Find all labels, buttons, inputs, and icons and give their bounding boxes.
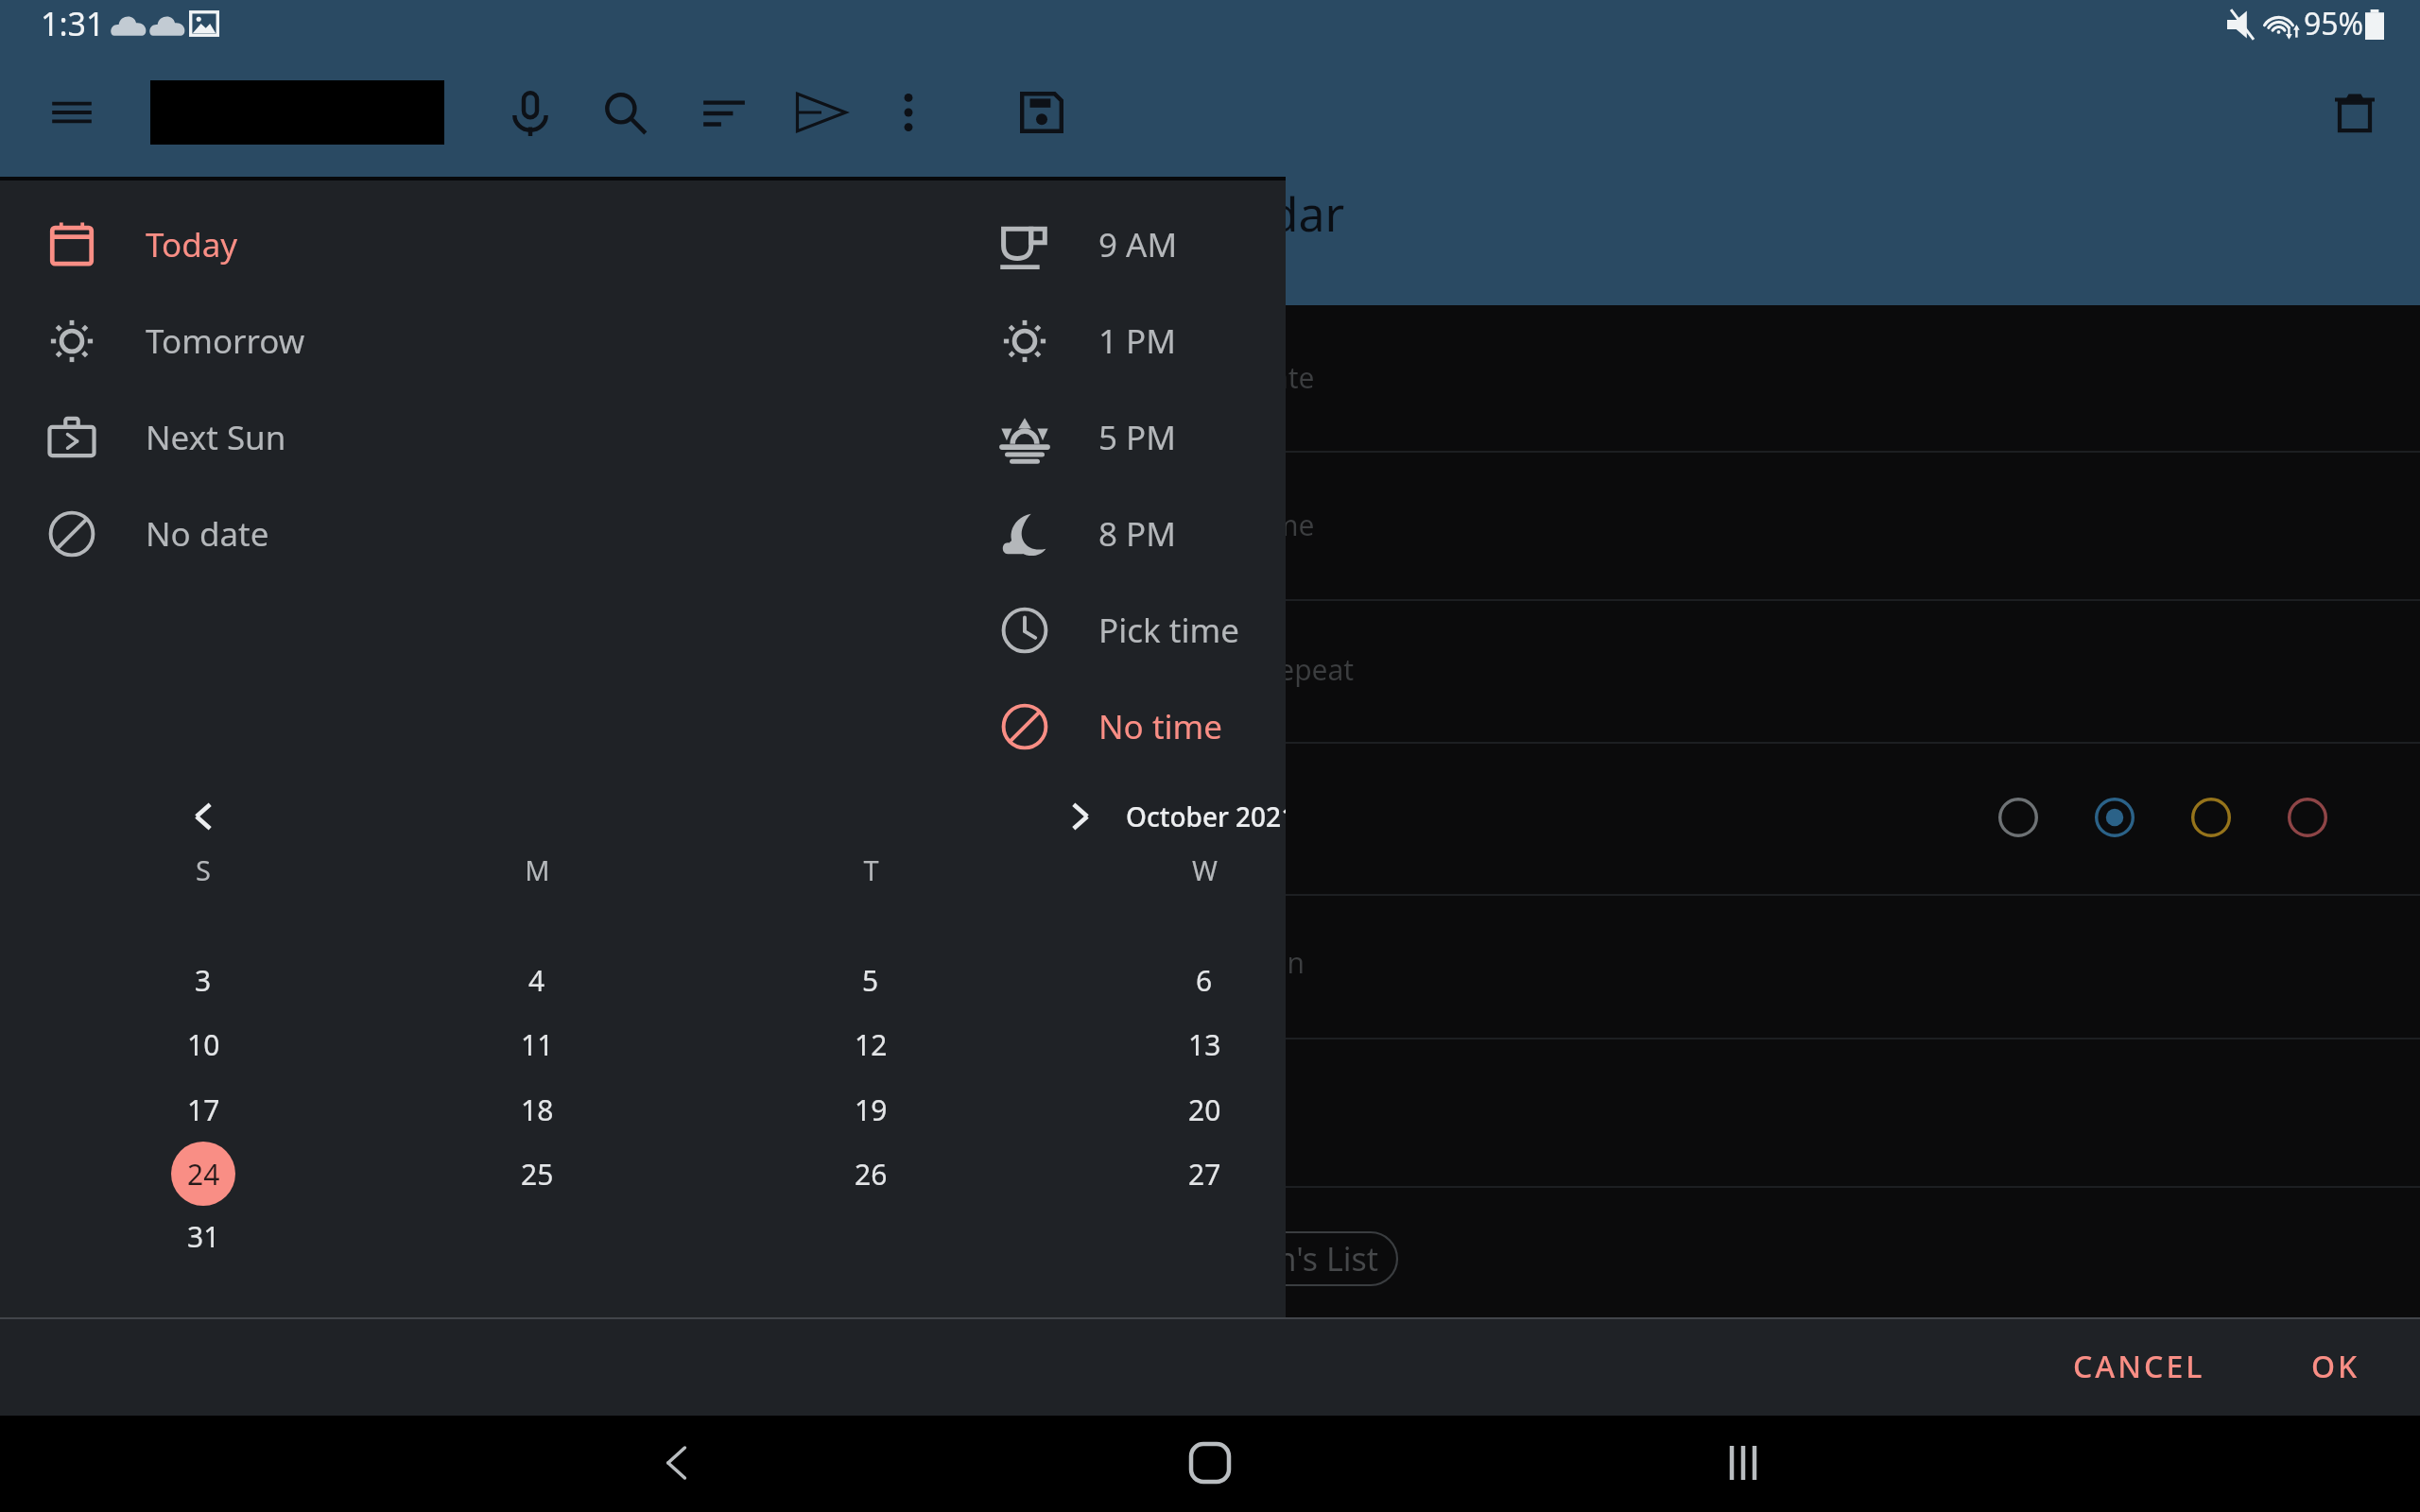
button[interactable]: No date (0, 486, 945, 582)
staticText: Pick time (1098, 608, 1239, 653)
staticText: 12 (855, 1025, 888, 1064)
button[interactable]: CANCEL (2039, 1317, 2239, 1416)
staticText: 5 (862, 961, 879, 1000)
staticText: 25 (521, 1155, 554, 1194)
button[interactable]: OK (2277, 1317, 2394, 1416)
button[interactable]: Pick time (949, 582, 1286, 679)
button[interactable]: 18 (505, 1077, 569, 1142)
staticText: 24 (187, 1155, 220, 1194)
button[interactable]: Recents (1696, 1416, 1790, 1510)
button[interactable]: Today (0, 197, 945, 293)
staticText: Time (1249, 506, 1315, 544)
staticText: 3 (195, 961, 212, 1000)
staticText: 11 (521, 1025, 554, 1064)
button[interactable]: 5 (838, 948, 903, 1012)
staticText: 95% (2304, 3, 2364, 44)
button[interactable]: 3 (171, 948, 235, 1012)
staticText: 19 (855, 1091, 888, 1129)
button[interactable]: Home (1163, 1416, 1257, 1510)
button[interactable]: Delete (2313, 70, 2396, 153)
staticText: W (1192, 851, 1218, 888)
button[interactable]: 26 (838, 1142, 903, 1206)
staticText: 13 (1188, 1025, 1221, 1064)
button[interactable]: Back (630, 1416, 724, 1510)
button[interactable]: Save (1000, 71, 1083, 154)
staticText: Today (146, 222, 238, 267)
staticText: October 2021 (1126, 799, 1286, 834)
staticText: 4 (528, 961, 545, 1000)
button[interactable]: No time (949, 679, 1286, 775)
button[interactable]: 5 PM (949, 389, 1286, 486)
button[interactable]: Children's List (1151, 1232, 1397, 1285)
button[interactable]: 4 (505, 948, 569, 1012)
button[interactable]: 13 (1172, 1012, 1236, 1076)
staticText: 9 AM (1098, 222, 1178, 267)
staticText: 31 (187, 1217, 220, 1256)
button[interactable]: More options (867, 71, 950, 154)
staticText: 6 (1196, 961, 1213, 1000)
staticText: 10 (187, 1025, 220, 1064)
staticText: 1 PM (1098, 318, 1177, 364)
button[interactable]: 17 (171, 1077, 235, 1142)
button[interactable]: Next Sun (0, 389, 945, 486)
staticText: Tomorrow (146, 318, 305, 364)
staticText: No date (146, 511, 269, 557)
button[interactable]: 9 AM (949, 197, 1286, 293)
staticText: No time (1098, 704, 1223, 749)
staticText: Children's List (1169, 1237, 1379, 1280)
button[interactable]: 10 (171, 1012, 235, 1076)
staticText: M (525, 851, 550, 888)
button[interactable]: 31 (171, 1204, 235, 1268)
staticText: 5 PM (1098, 415, 1177, 460)
staticText: Does not repeat (1140, 650, 1355, 689)
staticText: T (863, 851, 879, 888)
button[interactable]: 6 (1172, 948, 1236, 1012)
button[interactable]: 1 PM (949, 293, 1286, 389)
button[interactable]: Sort (683, 71, 766, 154)
button[interactable]: Search (583, 71, 666, 154)
staticText: 17 (187, 1091, 220, 1129)
staticText: 26 (855, 1155, 888, 1194)
button[interactable]: Colour option (2275, 785, 2340, 850)
staticText: S (196, 851, 211, 888)
staticText: 1:31 (41, 2, 105, 45)
staticText: CANCEL (2073, 1346, 2205, 1387)
staticText: Color (1195, 799, 1267, 837)
button[interactable]: Next month (1043, 779, 1118, 854)
staticText: Date (1252, 358, 1315, 397)
button[interactable]: Menu (30, 71, 113, 154)
button[interactable]: Previous month (165, 779, 241, 854)
staticText: Next Sun (146, 415, 286, 460)
button[interactable]: Colour option (2083, 785, 2147, 850)
staticText: Notification (1149, 943, 1305, 982)
button[interactable]: 11 (505, 1012, 569, 1076)
button[interactable]: Colour option (1986, 785, 2050, 850)
button[interactable]: 27 (1172, 1142, 1236, 1206)
button[interactable]: 19 (838, 1077, 903, 1142)
staticText: 20 (1188, 1091, 1221, 1129)
button[interactable]: 20 (1172, 1077, 1236, 1142)
staticText: 8 PM (1098, 511, 1177, 557)
button[interactable]: Send (780, 71, 863, 154)
staticText: OK (2311, 1346, 2360, 1387)
button[interactable]: 12 (838, 1012, 903, 1076)
button[interactable]: 24 (171, 1142, 235, 1206)
staticText: Calendar (1145, 181, 1345, 240)
staticText: 18 (521, 1091, 554, 1129)
button[interactable]: Tomorrow (0, 293, 945, 389)
staticText: 27 (1188, 1155, 1221, 1194)
button[interactable]: Voice input (489, 71, 572, 154)
button[interactable]: Colour option (2179, 785, 2243, 850)
button[interactable]: 8 PM (949, 486, 1286, 582)
button[interactable]: 25 (505, 1142, 569, 1206)
